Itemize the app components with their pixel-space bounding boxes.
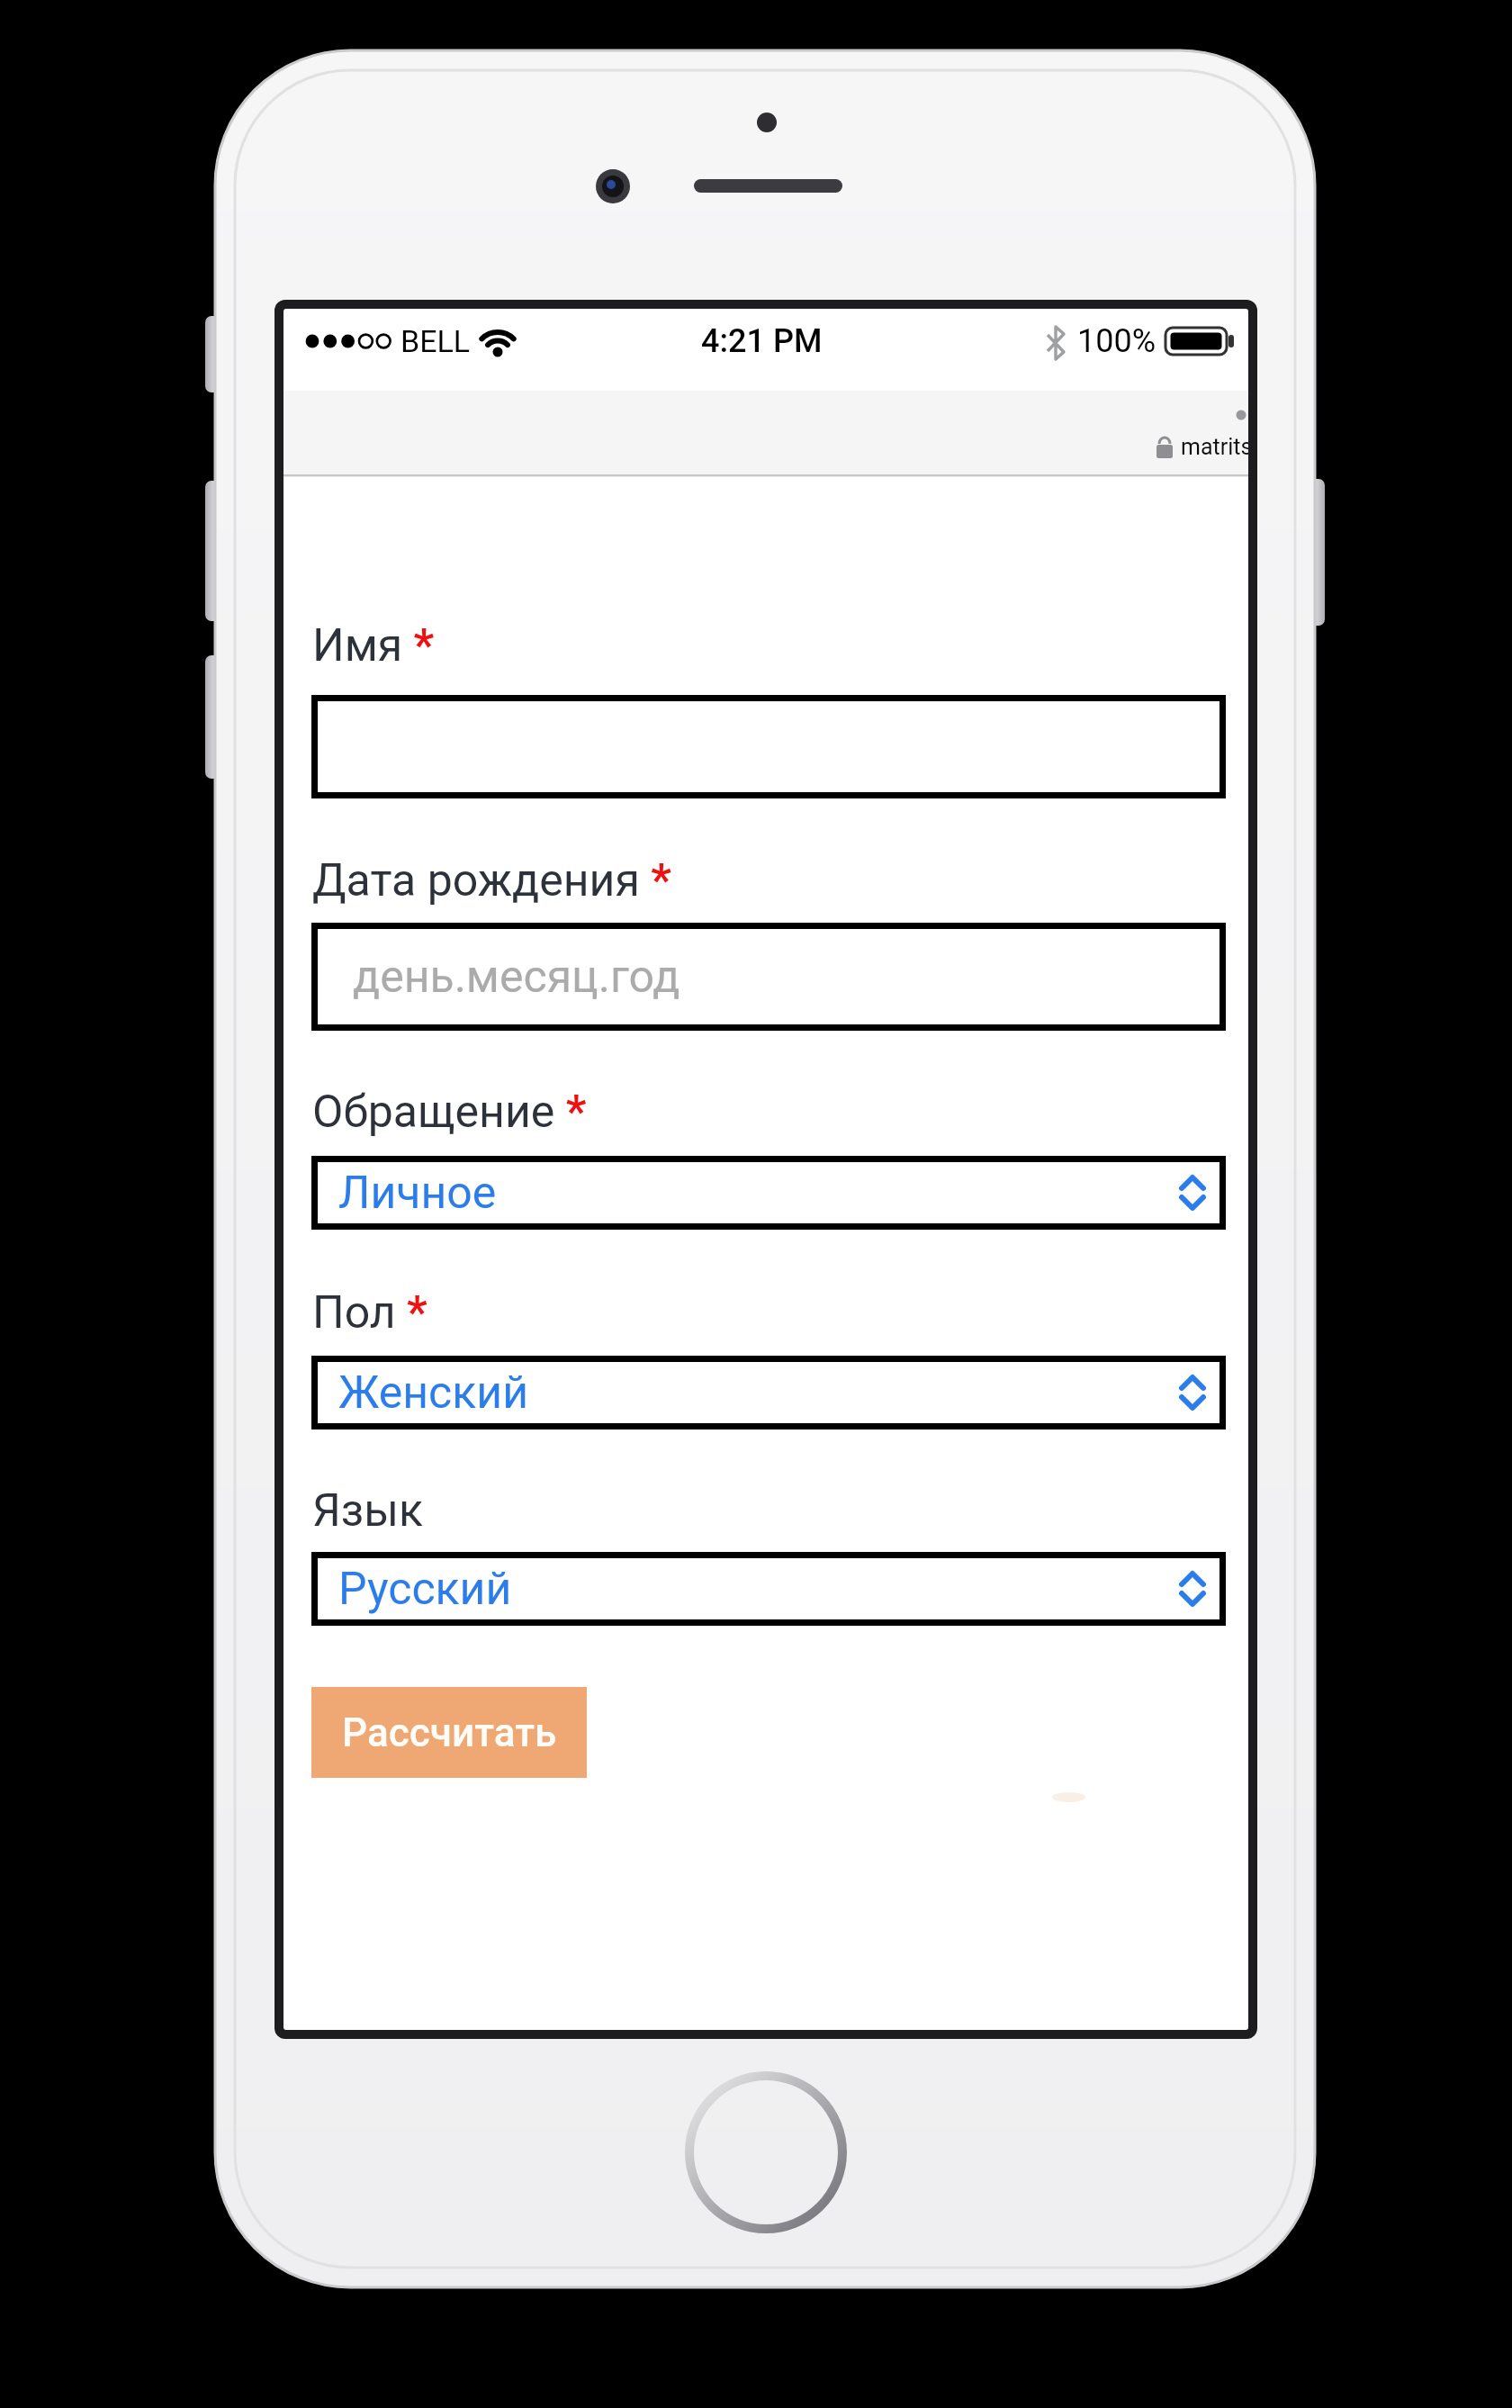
button[interactable]: Женский [311, 1356, 1226, 1429]
staticText: Личное [338, 1167, 497, 1220]
button[interactable]: Русский [311, 1552, 1226, 1626]
button[interactable]: Личное [311, 1156, 1226, 1230]
staticText: Имя * [312, 619, 435, 672]
staticText: Пол * [312, 1286, 427, 1339]
button[interactable]: день.месяц.год [311, 923, 1226, 1031]
staticText: Обращение * [312, 1086, 587, 1139]
staticText: Женский [338, 1366, 529, 1420]
staticText: BELL [400, 323, 471, 359]
staticText: Русский [338, 1563, 512, 1616]
staticText: Язык [312, 1484, 424, 1538]
staticText: matritsa [1181, 434, 1248, 460]
staticText: 100% [1077, 322, 1156, 360]
button[interactable] [311, 695, 1226, 798]
button[interactable]: Рассчитать [311, 1687, 587, 1778]
staticText: день.месяц.год [353, 951, 680, 1004]
staticText: 4:21 PM [701, 322, 823, 360]
staticText: Рассчитать [342, 1709, 557, 1756]
staticText: Дата рождения * [312, 854, 671, 907]
